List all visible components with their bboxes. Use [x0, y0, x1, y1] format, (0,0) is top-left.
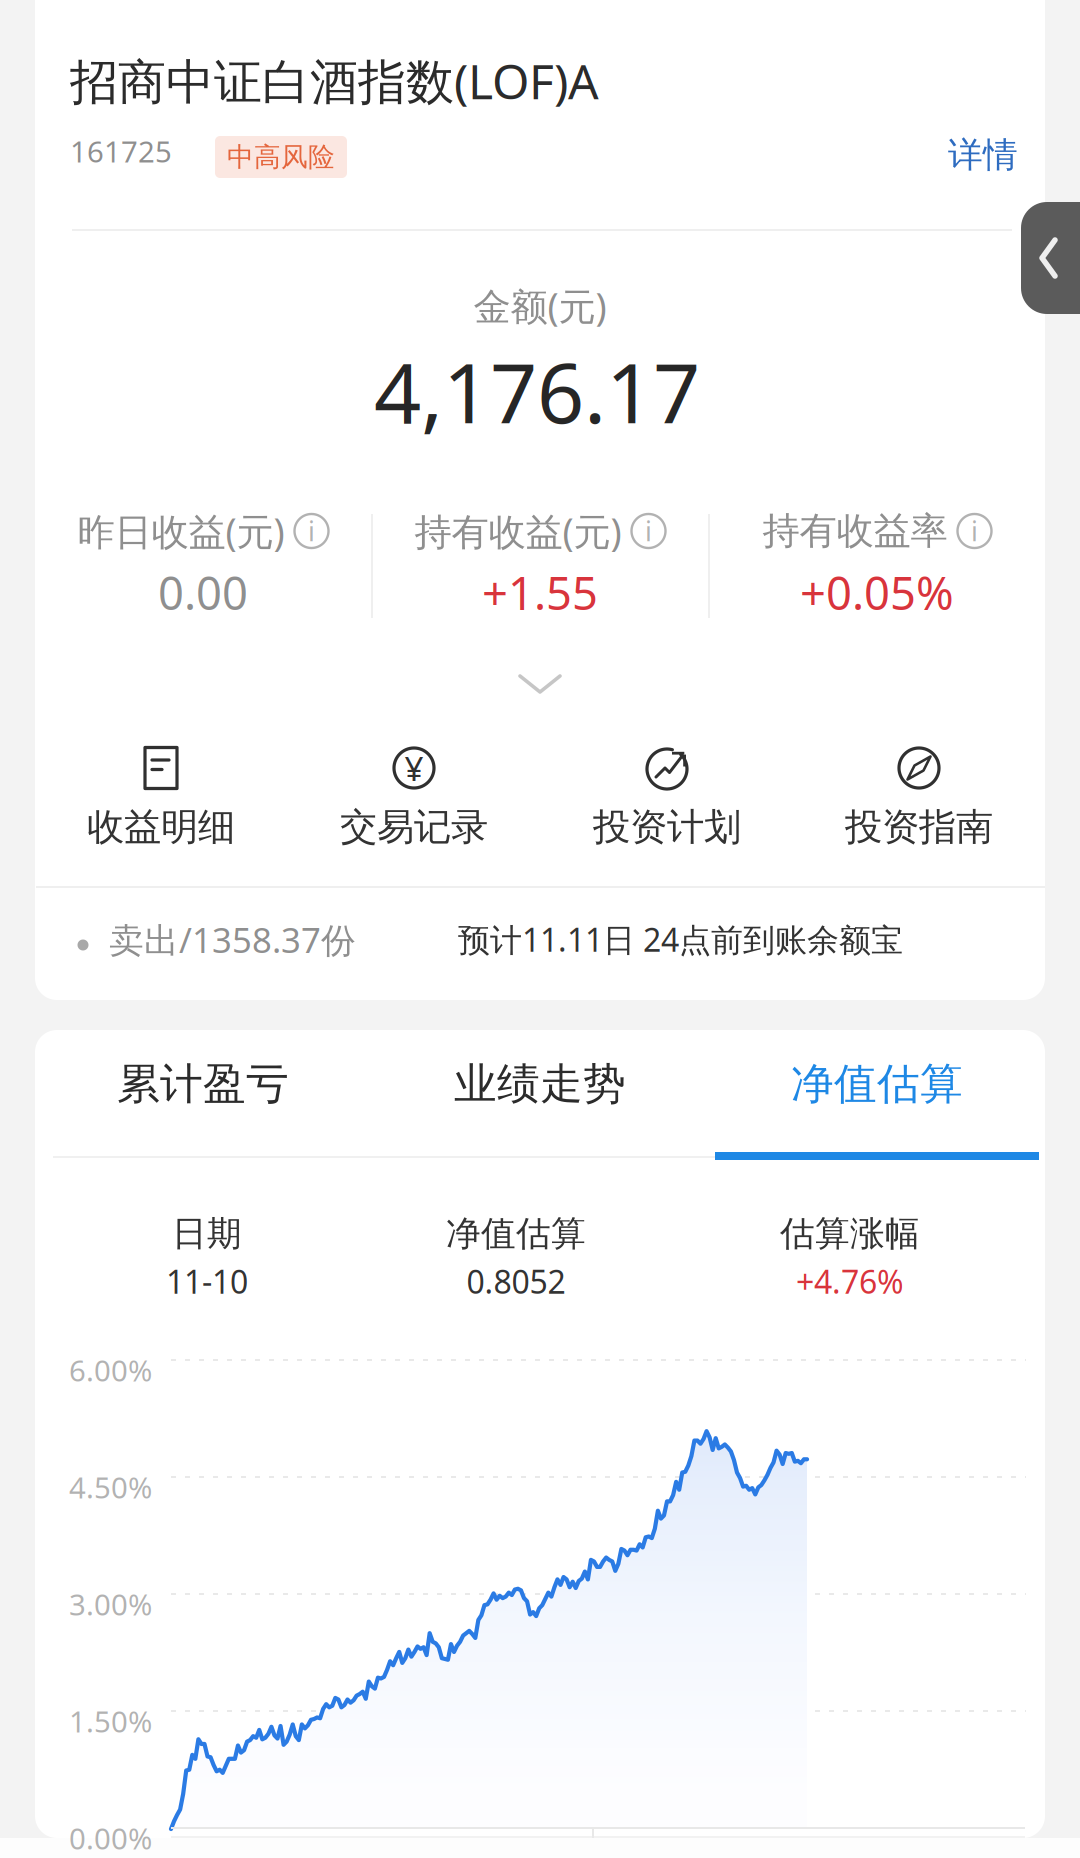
button[interactable]: 详情: [898, 118, 1018, 192]
button[interactable]: 收益明细: [35, 738, 287, 866]
staticText: 净值估算: [791, 1058, 963, 1110]
staticText: i: [645, 513, 652, 549]
staticText: 累计盈亏: [117, 1058, 289, 1110]
staticText: 11-10: [166, 1260, 248, 1303]
button[interactable]: 业绩走势: [372, 1030, 708, 1160]
staticText: 估算涨幅: [780, 1212, 920, 1255]
staticText: 详情: [948, 134, 1018, 176]
staticText: 0.00%: [69, 1818, 152, 1857]
button[interactable]: Expand side panel: [1021, 202, 1080, 314]
button[interactable]: ¥: [288, 738, 540, 866]
staticText: 4.50%: [69, 1467, 152, 1506]
staticText: 6.00%: [69, 1350, 152, 1389]
staticText: 1.50%: [69, 1701, 152, 1740]
staticText: 投资计划: [593, 804, 741, 850]
staticText: 投资指南: [845, 804, 993, 850]
button[interactable]: 净值估算: [709, 1030, 1045, 1160]
staticText: ¥: [404, 746, 423, 790]
staticText: 预计11.11日 24点前到账余额宝: [458, 918, 903, 961]
button[interactable]: Collapse summary: [470, 648, 610, 720]
staticText: 金额(元): [473, 281, 606, 331]
staticText: 招商中证白酒指数(LOF)A: [70, 49, 599, 112]
button[interactable]: 投资指南: [793, 738, 1045, 866]
staticText: 161725: [70, 132, 172, 171]
staticText: 0.00: [158, 562, 248, 622]
staticText: 卖出/1358.37份: [109, 917, 356, 963]
staticText: 日期: [172, 1212, 242, 1255]
button[interactable]: 卖出/1358.37份: [35, 888, 1045, 1000]
button[interactable]: 投资计划: [541, 738, 793, 866]
staticText: +1.55: [482, 562, 598, 622]
staticText: 净值估算: [446, 1212, 586, 1255]
staticText: 持有收益率: [762, 508, 947, 554]
staticText: 昨日收益(元): [77, 506, 284, 556]
staticText: 3.00%: [69, 1584, 152, 1623]
staticText: 中高风险: [227, 141, 335, 173]
staticText: 4,176.17: [374, 336, 700, 446]
staticText: i: [308, 513, 315, 549]
staticText: 持有收益(元): [414, 506, 621, 556]
staticText: 0.8052: [466, 1260, 565, 1303]
button[interactable]: 累计盈亏: [35, 1030, 371, 1160]
staticText: 收益明细: [87, 804, 235, 850]
staticText: 交易记录: [340, 804, 488, 850]
staticText: +0.05%: [800, 562, 954, 622]
staticText: i: [971, 513, 978, 549]
staticText: +4.76%: [796, 1260, 904, 1303]
staticText: 业绩走势: [454, 1058, 626, 1110]
